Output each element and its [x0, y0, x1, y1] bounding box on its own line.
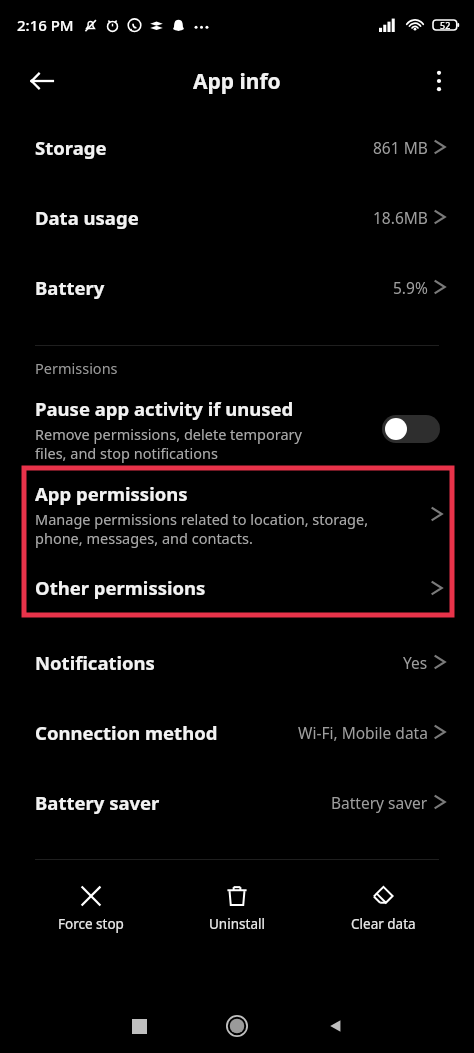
staticText: Wi-Fi, Mobile data	[298, 722, 428, 743]
staticText: Manage permissions related to location, …	[35, 509, 369, 548]
staticText: 18.6MB	[373, 207, 428, 228]
staticText: Storage	[35, 135, 107, 160]
staticText: Permissions	[35, 358, 118, 378]
button[interactable]: Recents	[120, 1007, 158, 1045]
staticText: Pause app activity if unused	[35, 396, 294, 421]
button[interactable]: Battery	[0, 252, 474, 322]
button[interactable]: Clear data	[328, 880, 438, 937]
button[interactable]: Back	[18, 57, 66, 105]
staticText: App info	[193, 67, 281, 96]
button[interactable]: Battery saver	[0, 767, 474, 837]
button[interactable]: Data usage	[0, 182, 474, 252]
button[interactable]: Force stop	[36, 880, 146, 937]
staticText: Uninstall	[209, 915, 265, 933]
button[interactable]: Connection method	[0, 697, 474, 767]
staticText: Notifications	[35, 650, 155, 675]
button[interactable]: Other permissions	[24, 560, 452, 615]
staticText: App permissions	[35, 481, 188, 506]
staticText: 5.9%	[393, 277, 428, 298]
staticText: Yes	[403, 652, 428, 673]
button[interactable]: Pause app activity toggle	[382, 415, 440, 443]
staticText: Other permissions	[35, 575, 206, 600]
button[interactable]: Pause app activity if unused	[0, 390, 474, 468]
staticText: 52	[440, 19, 451, 31]
button[interactable]: Back	[316, 1007, 354, 1045]
staticText: Connection method	[35, 720, 218, 745]
staticText: Force stop	[58, 915, 124, 933]
staticText: Battery	[35, 275, 105, 300]
staticText: Battery saver	[35, 790, 160, 815]
staticText: Clear data	[351, 915, 416, 933]
button[interactable]: Home	[218, 1007, 256, 1045]
button[interactable]: Notifications	[0, 627, 474, 697]
staticText: Remove permissions, delete temporary fil…	[35, 424, 302, 463]
button[interactable]: App permissions	[24, 468, 452, 560]
staticText: 861 MB	[373, 137, 428, 158]
button[interactable]: Uninstall	[182, 880, 292, 937]
staticText: 2:16 PM	[17, 15, 74, 35]
button[interactable]: Storage	[0, 112, 474, 182]
button[interactable]: More options	[416, 58, 462, 104]
staticText: Data usage	[35, 205, 139, 230]
staticText: Battery saver	[331, 792, 428, 813]
